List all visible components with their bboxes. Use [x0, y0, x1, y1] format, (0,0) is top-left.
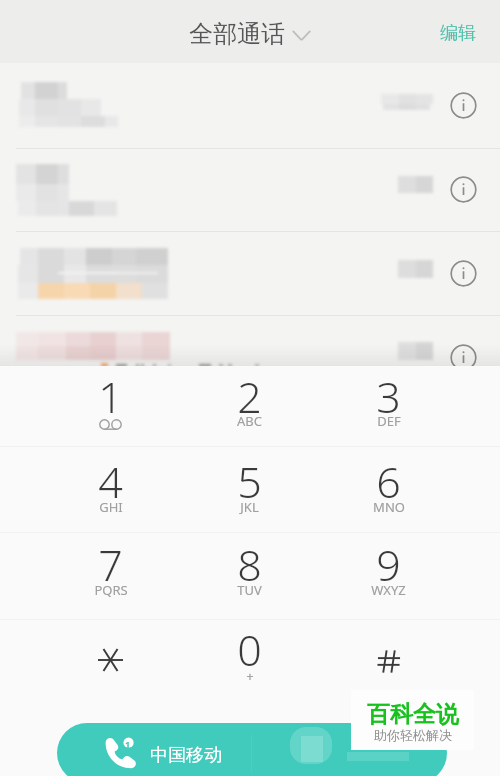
staticText: 8 [237, 535, 262, 594]
button[interactable]: 全部通话 [189, 19, 311, 49]
button[interactable]: 通话详情 [450, 176, 477, 203]
staticText: ABC [237, 412, 262, 430]
button[interactable]: 9 [319, 533, 458, 619]
button[interactable] [0, 315, 500, 371]
button[interactable]: 拨打电话 [57, 723, 447, 776]
staticText: 助你轻松解决 [374, 727, 452, 743]
staticText: 全部通话 [189, 19, 285, 49]
button[interactable]: 4 [41, 447, 180, 532]
staticText: PQRS [94, 581, 128, 599]
staticText: 3 [376, 367, 401, 426]
staticText: + [246, 667, 254, 685]
button[interactable] [0, 231, 500, 315]
other: 拨打电话 [105, 736, 136, 767]
staticText: 7 [98, 535, 123, 594]
button[interactable] [0, 148, 500, 231]
button[interactable]: 1 [41, 366, 180, 446]
staticText: GHI [99, 498, 123, 516]
staticText: 百科全说 [367, 700, 459, 729]
staticText: 6 [376, 452, 401, 511]
button[interactable]: 3 [319, 366, 458, 446]
button[interactable]: 编辑 [436, 16, 480, 51]
staticText: 1 [98, 367, 123, 426]
staticText: WXYZ [371, 581, 406, 599]
button[interactable]: 通话详情 [450, 344, 477, 371]
staticText: DEF [377, 412, 401, 430]
staticText: 9 [376, 535, 401, 594]
button[interactable]: 通话详情 [450, 260, 477, 287]
staticText: 0 [237, 620, 262, 679]
button[interactable]: 7 [41, 533, 180, 619]
button[interactable]: 5 [180, 447, 319, 532]
staticText: 4 [98, 452, 123, 511]
button[interactable]: * [41, 620, 180, 699]
button[interactable] [0, 63, 500, 148]
staticText: 5 [237, 452, 262, 511]
button[interactable]: 8 [180, 533, 319, 619]
staticText: 1 [125, 738, 131, 750]
staticText: TUV [237, 581, 262, 599]
staticText: JKL [240, 498, 259, 516]
button[interactable]: 通话详情 [450, 92, 477, 119]
button[interactable]: 0 [180, 620, 319, 699]
staticText: 中国移动 [150, 744, 222, 767]
button[interactable]: 2 [180, 366, 319, 446]
button[interactable]: 6 [319, 447, 458, 532]
button[interactable]: # [319, 620, 458, 699]
staticText: MNO [373, 498, 405, 516]
staticText: 编辑 [440, 22, 476, 45]
staticText: 2 [237, 367, 262, 426]
